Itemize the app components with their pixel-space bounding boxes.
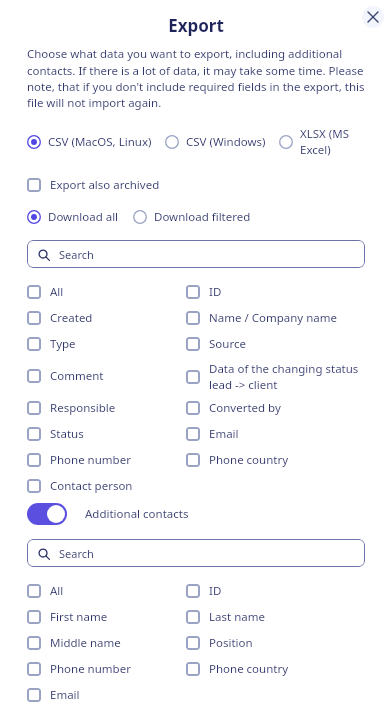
staticText: Export also archived (50, 177, 160, 193)
button[interactable]: Converted by (186, 400, 365, 416)
staticText: ID (209, 583, 222, 599)
staticText: ID (209, 284, 222, 300)
button[interactable]: Middle name (27, 635, 186, 651)
staticText: Download filtered (154, 209, 251, 225)
button[interactable]: Contact person (27, 478, 186, 494)
button[interactable]: Phone number (27, 452, 186, 468)
button[interactable]: Status (27, 426, 186, 442)
staticText: Search (59, 546, 94, 561)
staticText: Data of the changing status lead -> clie… (209, 361, 359, 392)
staticText: Phone number (50, 661, 131, 677)
staticText: All (50, 284, 64, 300)
staticText: Converted by (209, 400, 281, 416)
button[interactable]: Last name (186, 609, 365, 625)
button[interactable]: CSV (Windows) (165, 134, 266, 150)
button[interactable]: Comment (27, 368, 186, 384)
button[interactable]: Download all (27, 209, 119, 225)
staticText: CSV (MacOS, Linux) (48, 134, 152, 150)
button[interactable]: Phone country (186, 661, 365, 677)
staticText: Comment (50, 368, 104, 384)
button[interactable]: Export also archived (27, 175, 160, 195)
staticText: Export (168, 14, 224, 37)
staticText: Created (50, 310, 93, 326)
button[interactable]: Source (186, 336, 365, 352)
staticText: Type (50, 336, 76, 352)
button[interactable]: Download filtered (133, 209, 251, 225)
button[interactable]: Name / Company name (186, 310, 365, 326)
staticText: Contact person (50, 478, 133, 494)
staticText: Download all (48, 209, 119, 225)
staticText: Responsible (50, 400, 116, 416)
staticText: Last name (209, 609, 265, 625)
button[interactable]: XLSX (MS Excel) (279, 126, 365, 158)
staticText: CSV (Windows) (186, 134, 266, 150)
staticText: Phone country (209, 661, 289, 677)
button[interactable]: All (27, 583, 186, 599)
button[interactable]: Email (27, 687, 186, 703)
staticText: Search (59, 247, 94, 262)
button[interactable]: Position (186, 635, 365, 651)
staticText: Name / Company name (209, 310, 337, 326)
button[interactable]: Responsible (27, 400, 186, 416)
button[interactable]: ID (186, 284, 365, 300)
staticText: Phone country (209, 452, 289, 468)
button[interactable]: First name (27, 609, 186, 625)
button[interactable]: Phone number (27, 661, 186, 677)
button[interactable]: Email (186, 426, 365, 442)
staticText: Additional contacts (85, 506, 189, 522)
button[interactable]: Type (27, 336, 186, 352)
button[interactable]: Additional contacts (27, 503, 189, 525)
staticText: Position (209, 635, 253, 651)
button[interactable]: Phone country (186, 452, 365, 468)
staticText: Source (209, 336, 246, 352)
button[interactable]: Search (27, 240, 365, 268)
button[interactable]: ID (186, 583, 365, 599)
button[interactable]: Close (362, 6, 384, 28)
button[interactable]: Created (27, 310, 186, 326)
staticText: Status (50, 426, 84, 442)
staticText: Email (209, 426, 239, 442)
staticText: XLSX (MS Excel) (300, 126, 365, 158)
staticText: First name (50, 609, 108, 625)
staticText: Middle name (50, 635, 121, 651)
button[interactable]: Data of the changing status lead -> clie… (186, 361, 365, 392)
button[interactable]: All (27, 284, 186, 300)
button[interactable]: Search (27, 539, 365, 567)
staticText: All (50, 583, 64, 599)
button[interactable]: CSV (MacOS, Linux) (27, 134, 152, 150)
staticText: Phone number (50, 452, 131, 468)
staticText: Email (50, 687, 80, 703)
staticText: Choose what data you want to export, inc… (27, 46, 365, 110)
